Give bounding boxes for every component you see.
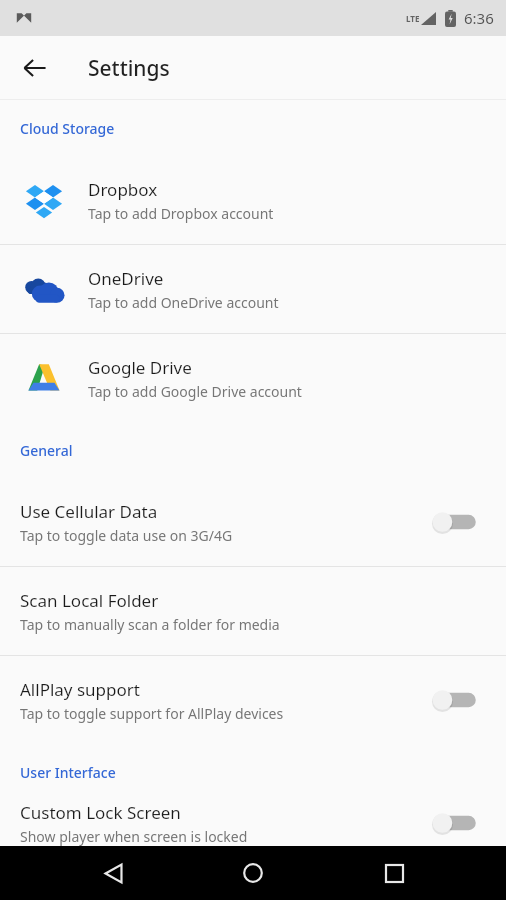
staticText: Tap to add Google Drive account: [88, 382, 302, 401]
button[interactable]: Back: [85, 846, 141, 900]
staticText: Tap to add Dropbox account: [88, 204, 274, 223]
staticText: Tap to add OneDrive account: [88, 293, 279, 312]
button[interactable]: Scan Local Folder: [0, 567, 506, 655]
staticText: Tap to toggle data use on 3G/4G: [20, 526, 233, 545]
staticText: Use Cellular Data: [20, 500, 158, 523]
button[interactable]: Back: [12, 45, 58, 91]
staticText: Settings: [88, 54, 170, 83]
staticText: LTE: [406, 13, 420, 24]
button[interactable]: Use Cellular Data: [0, 478, 506, 566]
staticText: Custom Lock Screen: [20, 801, 181, 824]
staticText: Cloud Storage: [20, 119, 115, 138]
staticText: General: [20, 441, 73, 460]
staticText: Tap to toggle support for AllPlay device…: [20, 704, 284, 723]
staticText: 6:36: [464, 8, 494, 28]
button[interactable]: Google Drive: [0, 334, 506, 422]
staticText: OneDrive: [88, 267, 164, 290]
button[interactable]: Dropbox: [0, 156, 506, 244]
button[interactable]: Recent apps: [366, 846, 422, 900]
staticText: Show player when screen is locked: [20, 827, 248, 846]
staticText: User Interface: [20, 763, 116, 782]
staticText: Scan Local Folder: [20, 589, 159, 612]
staticText: AllPlay support: [20, 678, 140, 701]
staticText: Dropbox: [88, 178, 158, 201]
staticText: Google Drive: [88, 356, 192, 379]
button[interactable]: AllPlay support: [0, 656, 506, 744]
button[interactable]: Custom Lock Screen: [0, 800, 506, 846]
button[interactable]: OneDrive: [0, 245, 506, 333]
button[interactable]: Home: [225, 846, 281, 900]
staticText: Tap to manually scan a folder for media: [20, 615, 280, 634]
